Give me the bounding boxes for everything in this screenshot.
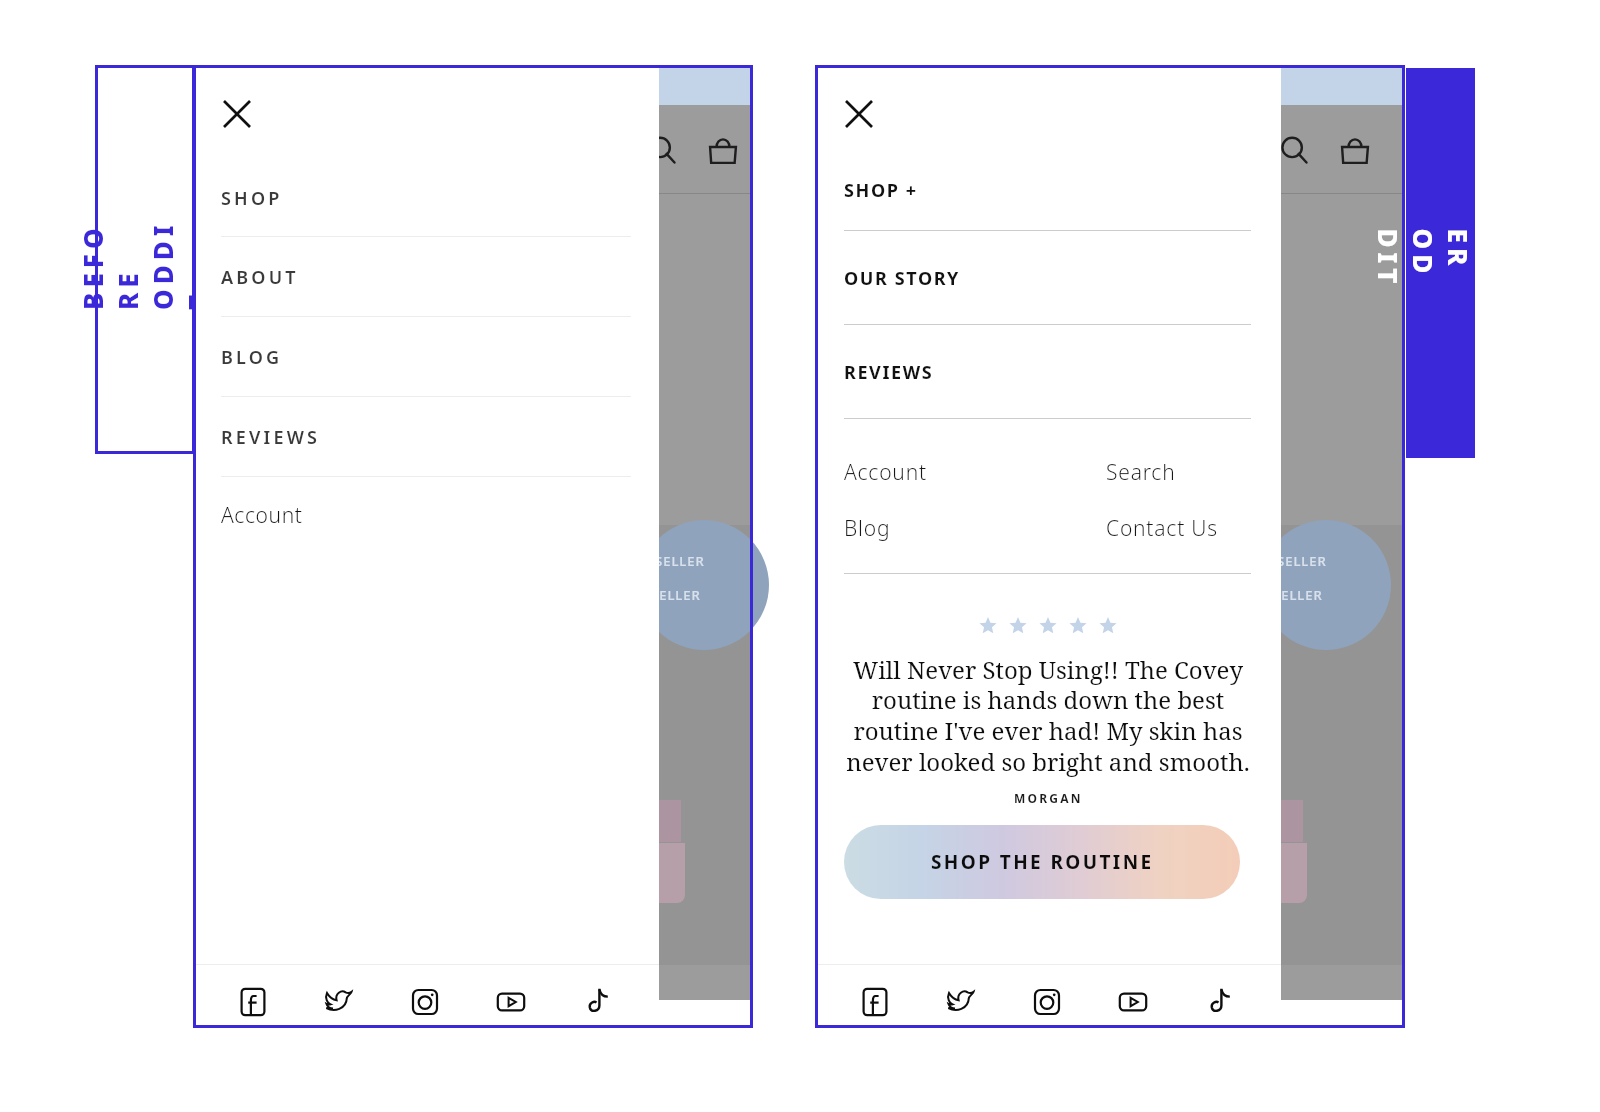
button[interactable]: TikTok: [1197, 980, 1241, 1024]
button[interactable]: BLOG: [193, 317, 659, 397]
button[interactable]: Search: [1106, 451, 1266, 493]
button[interactable]: REVIEWS: [815, 325, 1281, 419]
staticText: Will Never Stop Using!! The Covey routin…: [841, 653, 1255, 778]
button[interactable]: Search: [1277, 133, 1313, 169]
staticText: SELLER: [1273, 586, 1323, 604]
staticText: SHOP: [221, 186, 283, 211]
button[interactable]: Cart: [704, 131, 742, 169]
button[interactable]: Close menu: [836, 91, 882, 137]
staticText: Blog: [844, 514, 891, 543]
button[interactable]: Cart: [1336, 131, 1374, 169]
staticText: OUR STORY: [844, 266, 960, 291]
staticText: SELLER: [655, 552, 705, 570]
staticText: REVIEWS: [844, 360, 934, 385]
staticText: Account: [844, 458, 927, 487]
staticText: AFTER ODDIT: [1370, 228, 1510, 297]
button[interactable]: Account: [221, 485, 631, 545]
button[interactable]: TikTok: [575, 980, 619, 1024]
button[interactable]: SHOP: [193, 159, 659, 237]
button[interactable]: Twitter: [939, 980, 983, 1024]
button[interactable]: Twitter: [317, 980, 361, 1024]
staticText: REVIEWS: [221, 425, 321, 450]
button[interactable]: SHOP THE ROUTINE: [844, 825, 1240, 899]
staticText: MORGAN: [1014, 790, 1083, 806]
staticText: BEFORE ODDIT: [75, 210, 215, 310]
button[interactable]: Close menu: [214, 91, 260, 137]
staticText: Contact Us: [1106, 514, 1218, 543]
staticText: SELLER: [1277, 552, 1327, 570]
button[interactable]: Facebook: [231, 980, 275, 1024]
staticText: SELLER: [651, 586, 701, 604]
button[interactable]: REVIEWS: [193, 397, 659, 477]
staticText: ABOUT: [221, 265, 299, 290]
button[interactable]: YouTube: [1111, 980, 1155, 1024]
staticText: Search: [1106, 458, 1176, 487]
button[interactable]: Account: [844, 451, 1004, 493]
button[interactable]: Contact Us: [1106, 507, 1266, 549]
button[interactable]: Blog: [844, 507, 1004, 549]
staticText: SHOP THE ROUTINE: [931, 849, 1154, 875]
button[interactable]: OUR STORY: [815, 231, 1281, 325]
button[interactable]: Search: [645, 133, 681, 169]
staticText: Account: [221, 501, 303, 530]
staticText: SHOP +: [844, 178, 918, 203]
button[interactable]: Instagram: [1025, 980, 1069, 1024]
button[interactable]: Facebook: [853, 980, 897, 1024]
button[interactable]: YouTube: [489, 980, 533, 1024]
button[interactable]: ABOUT: [193, 237, 659, 317]
button[interactable]: SHOP +: [815, 149, 1281, 231]
button[interactable]: Instagram: [403, 980, 447, 1024]
staticText: BLOG: [221, 345, 283, 370]
